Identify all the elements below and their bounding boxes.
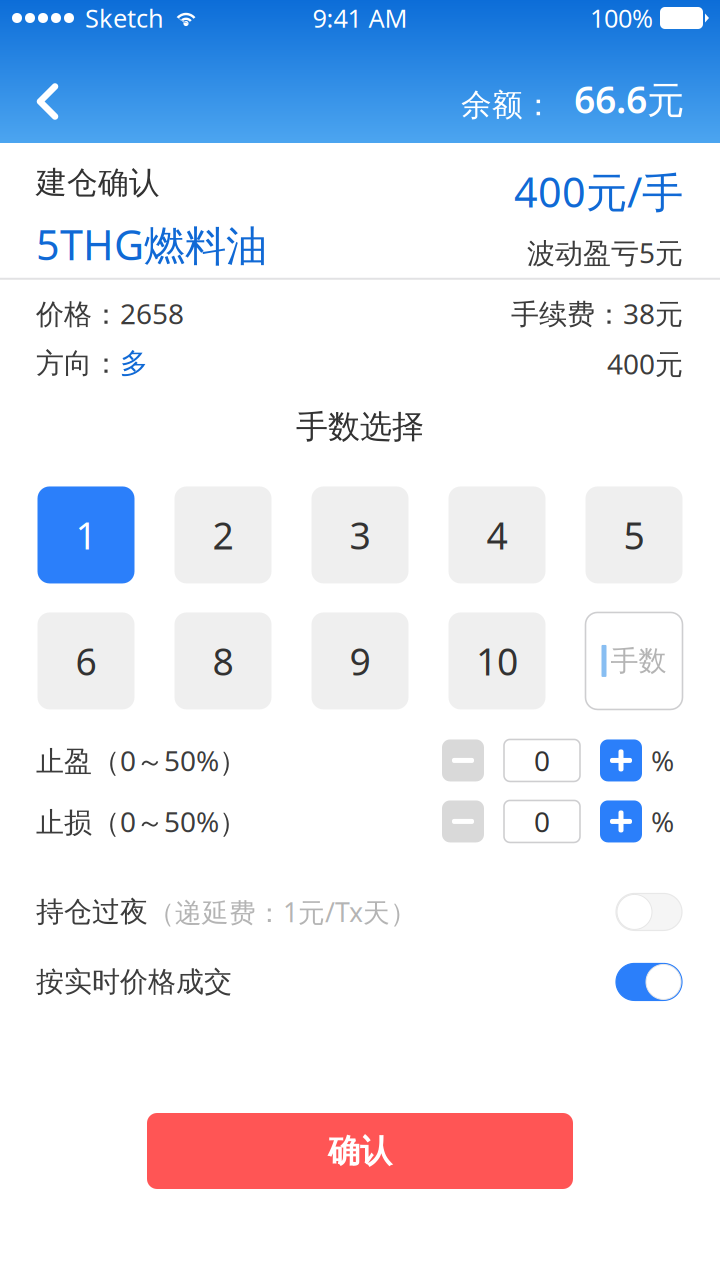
staticText: 手数 [610,644,666,678]
button[interactable]: 6 [37,612,134,709]
button[interactable]: Disabled [616,893,682,930]
button[interactable]: Back [0,40,85,139]
staticText: 持仓过夜 [36,895,148,929]
staticText: 0 [534,803,550,840]
button[interactable]: Increase [580,800,642,842]
staticText: 66.6元 [574,74,684,124]
staticText: （递延费：1元/Tx天） [148,894,417,930]
staticText: 9:41 AM [312,1,407,35]
staticText: 止盈（0～50%） [36,742,247,779]
staticText: 按实时价格成交 [36,965,232,999]
staticText: 方向： [36,346,120,381]
button[interactable]: 4 [448,486,545,583]
button[interactable]: 5 [585,486,682,583]
staticText: 400元/手 [514,164,683,219]
staticText: 3 [349,510,370,560]
staticText: 400元 [607,345,683,382]
button[interactable]: 手数 [585,612,682,709]
button[interactable]: 10 [448,612,545,709]
staticText: 100% [590,1,653,35]
staticText: 建仓确认 [36,164,160,202]
staticText: 4 [486,510,507,560]
button[interactable]: 余额： [461,40,720,139]
staticText: 余额： [461,86,554,124]
staticText: 多 [120,346,148,381]
staticText: % [651,803,674,840]
staticText: 5 [623,510,644,560]
button[interactable]: 2 [174,486,271,583]
staticText: 手续费：38元 [511,295,683,332]
staticText: 止损（0～50%） [36,803,247,840]
staticText: 波动盈亏5元 [527,234,683,271]
button[interactable]: 8 [174,612,271,709]
button[interactable]: 9 [311,612,408,709]
staticText: 2 [212,510,233,560]
staticText: Sketch [85,1,164,35]
staticText: 手数选择 [296,407,424,446]
staticText: 1 [75,510,96,560]
staticText: 9 [349,636,370,686]
button[interactable]: Enabled [616,963,682,1000]
staticText: 价格：2658 [36,295,184,332]
staticText: 确认 [328,1131,392,1171]
button[interactable]: 3 [311,486,408,583]
button[interactable]: 确认 [147,1113,573,1189]
button[interactable]: Decrease [442,739,484,781]
button[interactable]: Increase [580,739,642,781]
staticText: 6 [75,636,96,686]
staticText: 0 [534,742,550,779]
staticText: % [651,742,674,779]
staticText: 5THG燃料油 [36,217,267,272]
button[interactable]: Decrease [442,800,484,842]
button[interactable]: 1 [37,486,134,583]
staticText: 10 [476,636,518,686]
staticText: 8 [212,636,233,686]
